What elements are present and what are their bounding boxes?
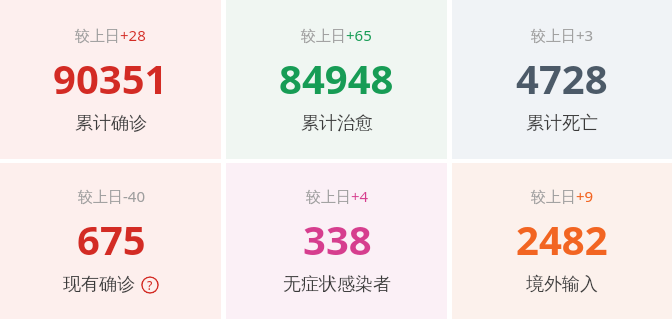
button[interactable]: 较上日+9 (452, 163, 672, 319)
staticText: 累计治愈 (301, 112, 373, 135)
staticText: 较上日+65 (301, 25, 372, 45)
staticText: 338 (303, 212, 372, 266)
staticText: 675 (77, 212, 146, 266)
staticText: 无症状感染者 (283, 273, 391, 296)
staticText: 90351 (53, 51, 168, 105)
staticText: 2482 (516, 212, 608, 266)
staticText: 较上日+3 (531, 25, 594, 45)
staticText: 较上日+9 (531, 186, 594, 206)
staticText: 较上日-40 (78, 186, 145, 206)
staticText: 累计死亡 (526, 112, 598, 135)
staticText: 累计确诊 (75, 112, 147, 135)
staticText: 4728 (516, 51, 608, 105)
staticText: 境外输入 (526, 273, 598, 296)
staticText: 较上日+28 (75, 25, 146, 45)
button[interactable]: 较上日+65 (226, 0, 447, 159)
staticText: ? (147, 277, 153, 293)
staticText: 84948 (279, 51, 394, 105)
button[interactable]: 较上日+3 (452, 0, 672, 159)
button[interactable]: 较上日+4 (226, 163, 447, 319)
staticText: 现有确诊 (63, 273, 135, 296)
button[interactable]: 较上日-40 (0, 163, 221, 319)
staticText: 较上日+4 (306, 186, 369, 206)
button[interactable]: 较上日+28 (0, 0, 221, 159)
button[interactable]: Help about existing confirmed cases (141, 276, 159, 294)
